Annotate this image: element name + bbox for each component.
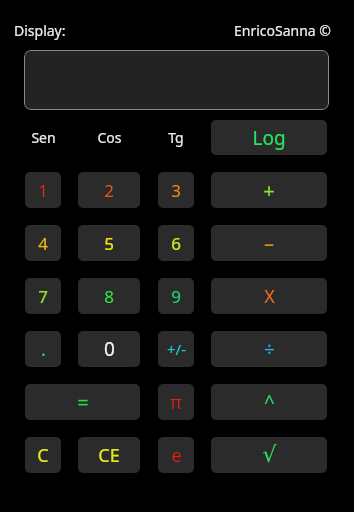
staticText: ^ — [264, 389, 275, 415]
button[interactable]: ÷ — [211, 331, 327, 367]
staticText: 2 — [104, 179, 114, 202]
staticText: Sen — [31, 128, 56, 147]
staticText: √ — [262, 442, 277, 468]
staticText: CE — [98, 443, 120, 468]
button[interactable]: 0 — [78, 331, 140, 367]
button[interactable]: 8 — [78, 278, 140, 314]
button[interactable]: . — [25, 331, 61, 367]
button[interactable]: 2 — [78, 172, 140, 208]
button[interactable]: C — [25, 437, 61, 473]
staticText: ÷ — [264, 336, 275, 362]
button[interactable]: 9 — [158, 278, 194, 314]
staticText: Display: — [14, 21, 66, 40]
staticText: π — [170, 390, 182, 415]
staticText: – — [264, 230, 274, 257]
staticText: 6 — [171, 232, 181, 255]
staticText: 5 — [104, 232, 114, 255]
staticText: 7 — [38, 285, 48, 308]
button[interactable]: 1 — [25, 172, 61, 208]
staticText: X — [264, 284, 275, 309]
staticText: 8 — [104, 285, 114, 308]
button[interactable]: Cos — [78, 120, 140, 155]
button[interactable]: 5 — [78, 225, 140, 261]
button[interactable]: Square root — [211, 437, 327, 473]
button[interactable]: Tg — [152, 120, 200, 155]
staticText: . — [41, 337, 46, 362]
button[interactable]: Log — [211, 120, 327, 155]
staticText: = — [77, 389, 89, 416]
staticText: + — [263, 177, 275, 204]
button[interactable]: X — [211, 278, 327, 314]
staticText: 9 — [171, 285, 181, 308]
staticText: C — [37, 443, 49, 468]
button[interactable]: 3 — [158, 172, 194, 208]
button[interactable] — [24, 50, 329, 110]
button[interactable]: + — [211, 172, 327, 208]
staticText: 0 — [104, 336, 115, 362]
button[interactable]: CE — [78, 437, 140, 473]
button[interactable]: ^ — [211, 384, 327, 420]
button[interactable]: e — [158, 437, 194, 473]
button[interactable]: 7 — [25, 278, 61, 314]
button[interactable]: Sen — [16, 120, 70, 155]
button[interactable]: 4 — [25, 225, 61, 261]
staticText: 4 — [38, 232, 48, 255]
staticText: e — [171, 443, 182, 468]
staticText: Cos — [97, 128, 122, 147]
staticText: 3 — [171, 179, 181, 202]
button[interactable]: = — [25, 384, 140, 420]
staticText: +/- — [167, 339, 186, 359]
staticText: 1 — [38, 179, 48, 202]
staticText: Tg — [168, 128, 184, 147]
button[interactable]: 6 — [158, 225, 194, 261]
staticText: EnricoSanna © — [233, 21, 331, 40]
button[interactable]: π — [158, 384, 194, 420]
button[interactable]: – — [211, 225, 327, 261]
button[interactable]: +/- — [158, 331, 194, 367]
staticText: Log — [252, 125, 286, 151]
